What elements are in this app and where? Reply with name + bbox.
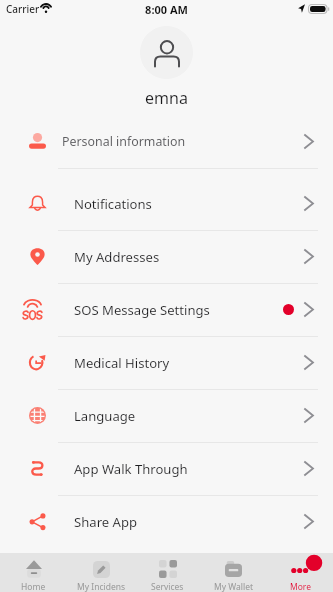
- button[interactable]: More: [267, 553, 333, 592]
- staticText: emna: [0, 87, 333, 109]
- button[interactable]: Notifications: [0, 177, 333, 230]
- button[interactable]: My Wallet: [200, 553, 267, 592]
- button[interactable]: App Walk Through: [0, 442, 333, 495]
- staticText: Notifications: [74, 195, 152, 213]
- button[interactable]: Services: [134, 553, 201, 592]
- button[interactable]: Language: [0, 389, 333, 442]
- staticText: Carrier: [6, 2, 40, 16]
- staticText: Home: [21, 581, 46, 592]
- staticText: More: [290, 581, 311, 592]
- staticText: App Walk Through: [74, 460, 188, 478]
- button[interactable]: Share App: [0, 495, 333, 548]
- staticText: My Wallet: [214, 581, 254, 592]
- staticText: Medical History: [74, 354, 170, 372]
- staticText: Share App: [74, 513, 138, 531]
- button[interactable]: Medical History: [0, 336, 333, 389]
- button[interactable]: Home: [0, 553, 67, 592]
- staticText: SOS Message Settings: [74, 301, 210, 319]
- button[interactable]: My Incidens: [68, 553, 135, 592]
- staticText: My Incidens: [77, 581, 126, 592]
- button[interactable]: My Addresses: [0, 230, 333, 283]
- staticText: Language: [74, 407, 136, 425]
- button[interactable]: SOS Message Settings: [0, 283, 333, 336]
- staticText: Services: [151, 581, 184, 592]
- staticText: Personal information: [62, 133, 186, 150]
- button[interactable]: Personal information: [0, 115, 333, 168]
- staticText: My Addresses: [74, 248, 160, 266]
- staticText: 8:00 AM: [0, 2, 333, 17]
